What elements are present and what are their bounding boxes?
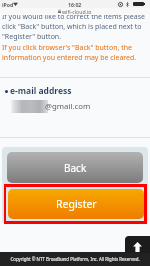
staticText: If you click browser's "Back" button, th… xyxy=(2,43,150,63)
button[interactable]: Register xyxy=(8,189,144,219)
staticText: 16:02 xyxy=(68,1,82,8)
staticText: wifi-cloud.jp xyxy=(62,8,92,14)
staticText: Back xyxy=(64,161,87,175)
staticText: Register xyxy=(56,197,97,211)
staticText: iPod xyxy=(2,1,14,8)
button[interactable]: Scroll to top xyxy=(125,236,150,253)
staticText: e-mail address xyxy=(10,85,72,97)
staticText: If you would like to correct the items p… xyxy=(2,15,150,42)
button[interactable]: Back xyxy=(7,152,143,183)
staticText: @gmail.com xyxy=(45,101,91,112)
staticText: Copyright © NTT Broadband Platform, Inc.… xyxy=(10,256,140,262)
